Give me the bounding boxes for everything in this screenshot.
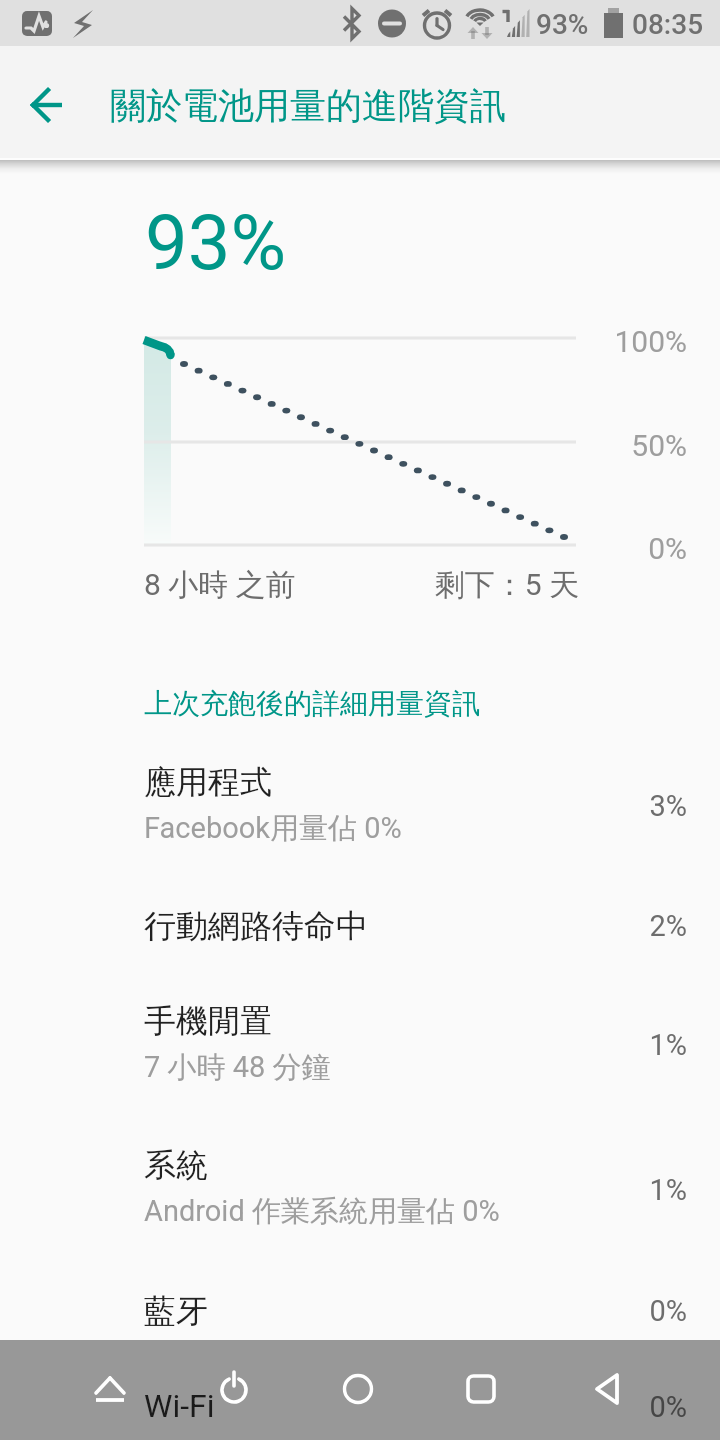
button[interactable]: 應用程式 [0,760,720,900]
button[interactable]: Wi-Fi [0,1383,720,1440]
staticText: 93% [536,8,589,41]
button[interactable]: 行動網路待命中 [0,902,720,998]
button[interactable]: 藍牙 [0,1287,720,1383]
staticText: 行動網路待命中 [144,906,368,946]
button[interactable]: Recents [432,1340,532,1440]
staticText: 0% [577,1294,687,1328]
button[interactable]: 系統 [0,1143,720,1283]
button[interactable]: Back [11,69,83,141]
staticText: 93% [145,198,287,287]
staticText: 7 小時 48 分鐘 [144,1049,331,1086]
staticText: 0% [577,1390,687,1424]
staticText: 8 小時 之前 [144,566,296,604]
staticText: 藍牙 [144,1291,208,1331]
button[interactable]: Show navigation bar [60,1340,160,1440]
staticText: Wi-Fi [144,1387,215,1425]
staticText: 上次充飽後的詳細用量資訊 [144,686,480,721]
staticText: 2% [577,909,687,943]
staticText: 系統 [144,1145,208,1185]
staticText: 0% [577,531,687,566]
staticText: 手機閒置 [144,1001,272,1041]
staticText: 1% [577,1173,687,1207]
staticText: 100% [577,324,687,359]
staticText: Android 作業系統用量佔 0% [144,1193,500,1230]
button[interactable]: Home [308,1340,408,1440]
staticText: 3% [577,789,687,823]
staticText: Facebook用量佔 0% [144,810,402,847]
button[interactable]: Power [184,1340,284,1440]
staticText: 關於電池用量的進階資訊 [110,83,506,128]
button[interactable]: 手機閒置 [0,999,720,1139]
staticText: 應用程式 [144,762,272,802]
staticText: 50% [577,428,687,463]
button[interactable]: Back [556,1340,656,1440]
staticText: 剩下：5 天 [300,566,579,604]
staticText: 1% [577,1028,687,1062]
staticText: 08:35 [632,8,704,41]
